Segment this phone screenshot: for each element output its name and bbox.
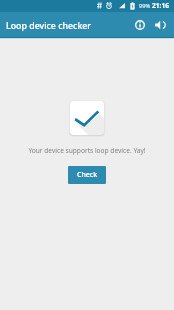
staticText: Check bbox=[77, 170, 98, 180]
button[interactable]: Check bbox=[68, 166, 106, 184]
staticText: 99% bbox=[139, 2, 151, 10]
button[interactable]: Info bbox=[130, 15, 150, 35]
staticText: 21:16 bbox=[152, 1, 169, 10]
staticText: Your device supports loop device. Yay! bbox=[28, 146, 146, 155]
button[interactable]: Sound bbox=[150, 15, 170, 35]
staticText: Loop device checker bbox=[6, 20, 92, 32]
